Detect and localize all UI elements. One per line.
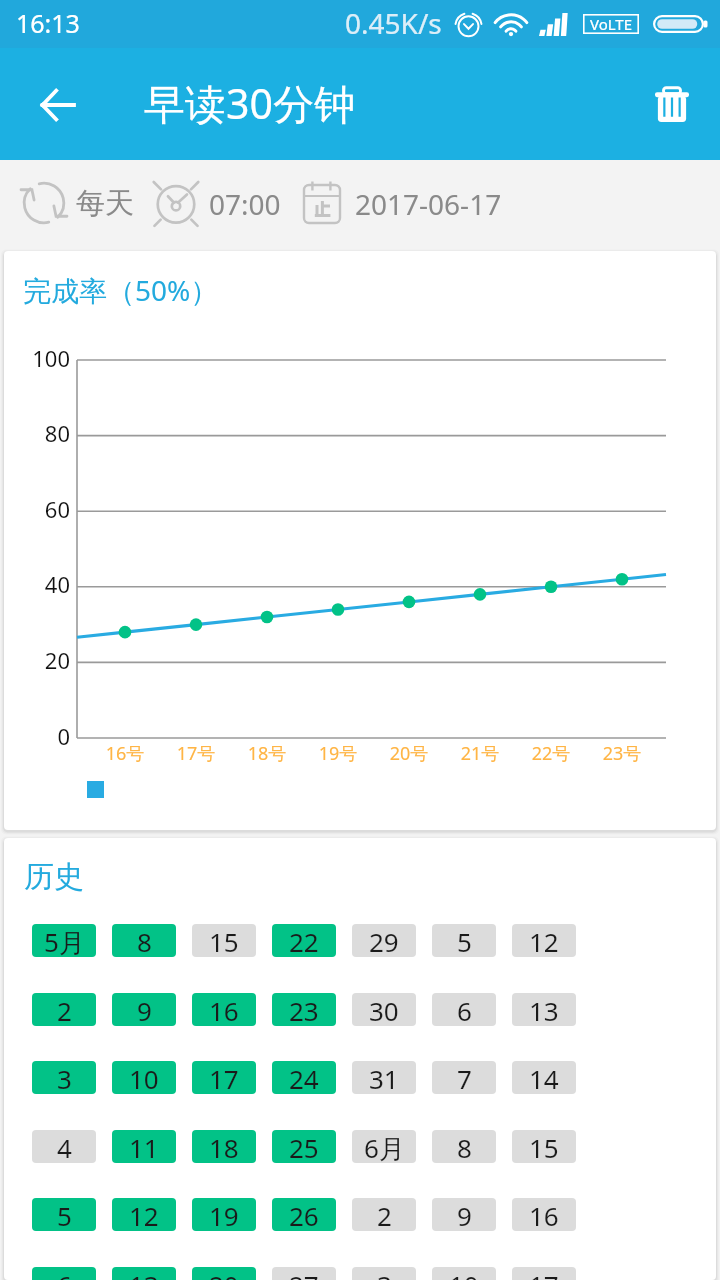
button[interactable]: 6 — [432, 993, 496, 1026]
button[interactable]: 15 — [192, 924, 256, 957]
staticText: 20 — [209, 1267, 239, 1280]
staticText: 30 — [369, 993, 399, 1026]
staticText: 5 — [57, 1198, 72, 1231]
staticText: 13 — [529, 993, 559, 1026]
button[interactable]: 9 — [112, 993, 176, 1026]
staticText: 10 — [449, 1267, 479, 1280]
button[interactable]: 6月 — [352, 1130, 416, 1163]
staticText: 0.45K/s — [345, 4, 442, 42]
staticText: 17号 — [161, 741, 231, 766]
staticText: 5 — [457, 924, 472, 957]
staticText: 8 — [137, 924, 152, 957]
button[interactable]: 31 — [352, 1061, 416, 1094]
button[interactable]: 17 — [512, 1267, 576, 1280]
button[interactable]: 18 — [192, 1130, 256, 1163]
staticText: 16 — [209, 993, 239, 1026]
staticText: 每天 — [76, 185, 134, 222]
staticText: 0 — [7, 721, 70, 751]
button[interactable]: 12 — [512, 924, 576, 957]
staticText: 17 — [529, 1267, 559, 1280]
button[interactable]: 2 — [352, 1198, 416, 1231]
button[interactable]: 4 — [32, 1130, 96, 1163]
button[interactable]: 27 — [272, 1267, 336, 1280]
button[interactable]: 26 — [272, 1198, 336, 1231]
staticText: 6 — [457, 993, 472, 1026]
button[interactable]: 8 — [432, 1130, 496, 1163]
staticText: 20 — [7, 645, 70, 675]
button[interactable]: 5 — [32, 1198, 96, 1231]
button[interactable]: 19 — [192, 1198, 256, 1231]
staticText: 3 — [57, 1061, 72, 1094]
staticText: 完成率（50%） — [23, 271, 219, 309]
button[interactable]: 2 — [32, 993, 96, 1026]
staticText: 11 — [129, 1130, 159, 1163]
staticText: 17 — [209, 1061, 239, 1094]
staticText: 15 — [529, 1130, 559, 1163]
button[interactable]: 13 — [112, 1267, 176, 1280]
staticText: 27 — [289, 1267, 319, 1280]
staticText: 历史 — [24, 858, 84, 896]
staticText: 6月 — [364, 1130, 405, 1163]
staticText: 20号 — [374, 741, 444, 766]
staticText: 29 — [369, 924, 399, 957]
button[interactable]: 23 — [272, 993, 336, 1026]
button[interactable]: 22 — [272, 924, 336, 957]
staticText: 22 — [289, 924, 319, 957]
staticText: 2 — [57, 993, 72, 1026]
button[interactable]: 12 — [112, 1198, 176, 1231]
button[interactable]: 16 — [512, 1198, 576, 1231]
staticText: 5月 — [44, 924, 85, 957]
staticText: 12 — [529, 924, 559, 957]
button[interactable]: 25 — [272, 1130, 336, 1163]
staticText: 80 — [7, 418, 70, 448]
staticText: 26 — [289, 1198, 319, 1231]
staticText: 14 — [529, 1061, 559, 1094]
button[interactable]: 3 — [32, 1061, 96, 1094]
button[interactable]: 10 — [432, 1267, 496, 1280]
staticText: 15 — [209, 924, 239, 957]
staticText: 60 — [7, 494, 70, 524]
button[interactable]: Delete — [639, 71, 705, 137]
staticText: 19号 — [303, 741, 373, 766]
button[interactable]: 6 — [32, 1267, 96, 1280]
staticText: 13 — [129, 1267, 159, 1280]
staticText: 23 — [289, 993, 319, 1026]
button[interactable]: 5月 — [32, 924, 96, 957]
button[interactable]: 13 — [512, 993, 576, 1026]
button[interactable]: 8 — [112, 924, 176, 957]
staticText: 6 — [57, 1267, 72, 1280]
button[interactable]: 24 — [272, 1061, 336, 1094]
button[interactable]: 15 — [512, 1130, 576, 1163]
staticText: 24 — [289, 1061, 319, 1094]
staticText: 2 — [377, 1198, 392, 1231]
staticText: 16 — [529, 1198, 559, 1231]
staticText: 40 — [7, 569, 70, 599]
button[interactable]: 16 — [192, 993, 256, 1026]
staticText: 7 — [457, 1061, 472, 1094]
button[interactable]: 20 — [192, 1267, 256, 1280]
staticText: 10 — [129, 1061, 159, 1094]
staticText: 9 — [457, 1198, 472, 1231]
staticText: VoLTE — [590, 14, 633, 34]
button[interactable]: 11 — [112, 1130, 176, 1163]
button[interactable]: 14 — [512, 1061, 576, 1094]
staticText: 31 — [369, 1061, 399, 1094]
staticText: 100 — [7, 343, 70, 373]
button[interactable]: 3 — [352, 1267, 416, 1280]
staticText: 19 — [209, 1198, 239, 1231]
button[interactable]: 10 — [112, 1061, 176, 1094]
staticText: 早读30分钟 — [144, 75, 355, 131]
button[interactable]: 7 — [432, 1061, 496, 1094]
staticText: 4 — [57, 1130, 72, 1163]
staticText: 8 — [457, 1130, 472, 1163]
staticText: 18号 — [232, 741, 302, 766]
button[interactable]: 29 — [352, 924, 416, 957]
button[interactable]: 9 — [432, 1198, 496, 1231]
button[interactable]: Back — [25, 72, 90, 137]
staticText: 9 — [137, 993, 152, 1026]
button[interactable]: 17 — [192, 1061, 256, 1094]
staticText: 18 — [209, 1130, 239, 1163]
button[interactable]: 5 — [432, 924, 496, 957]
staticText: 07:00 — [209, 185, 281, 223]
button[interactable]: 30 — [352, 993, 416, 1026]
